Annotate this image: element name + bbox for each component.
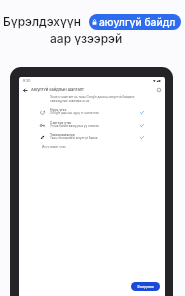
staticText: Сэргээх утас xyxy=(50,121,72,125)
staticText: Эхлүүлэх xyxy=(137,285,154,289)
staticText: Төхөөрөмжүүд xyxy=(50,133,75,137)
button[interactable]: Илүү ихийг үзэх xyxy=(42,145,66,149)
staticText: Аюулгүй байдлын шалгалт xyxy=(31,87,84,92)
button[interactable]: Back xyxy=(21,86,30,95)
staticText: Утсаа баталгаажуулна уу хэмээн xyxy=(50,124,99,128)
button[interactable]: аюулгүй байдл xyxy=(89,14,181,30)
button[interactable]: Нууц үгээ xyxy=(37,107,147,118)
staticText: Бүрэлдэхүүн xyxy=(3,14,81,29)
button[interactable]: Төхөөрөмжүүд xyxy=(37,132,147,143)
staticText: Google дансны нууц үг шинэчлэх xyxy=(50,111,99,115)
button[interactable]: Help xyxy=(155,86,163,94)
staticText: аюулгүй байдл xyxy=(99,16,176,28)
staticText: 9:30 xyxy=(23,79,31,83)
staticText: Энэхүү шалгалт нь таны Google дансны аюу… xyxy=(50,95,135,103)
staticText: аар үзээрэй xyxy=(50,31,123,46)
staticText: Нууц үгээ xyxy=(50,108,67,112)
button[interactable]: Сэргээх утас xyxy=(37,120,147,131)
staticText: Таны төхөөрөмж аюулгүй байна xyxy=(50,136,98,140)
button[interactable]: Эхлүүлэх xyxy=(131,282,160,291)
